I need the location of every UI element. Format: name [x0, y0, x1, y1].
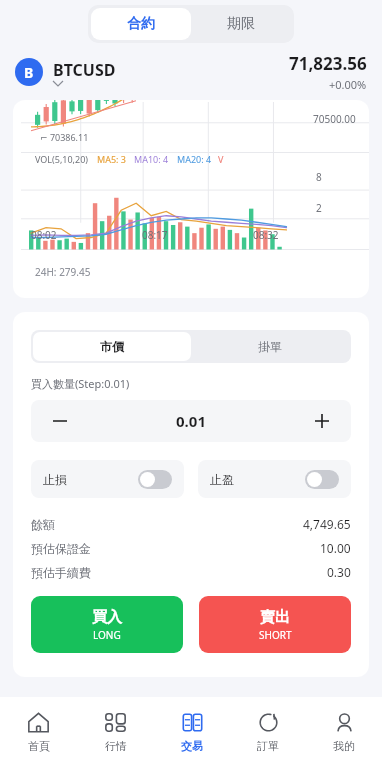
button[interactable]: 期限 — [191, 8, 291, 40]
staticText: 止損 — [43, 472, 67, 487]
staticText: MA10: 4 — [134, 153, 169, 165]
staticText: 行情 — [105, 739, 127, 753]
staticText: 70500.00 — [313, 112, 356, 126]
staticText: LONG — [93, 628, 121, 642]
button[interactable]: 止盈 — [198, 460, 351, 498]
staticText: 08:32 — [253, 228, 279, 242]
staticText: V — [218, 153, 224, 165]
staticText: MA5: 3 — [97, 153, 126, 165]
button[interactable]: 止損 — [31, 460, 184, 498]
button[interactable]: 合約 — [91, 8, 191, 40]
staticText: 買入 — [92, 608, 122, 627]
button[interactable]: 我的 — [306, 697, 382, 767]
button[interactable]: 掛單 — [191, 332, 349, 361]
staticText: 餘額 — [31, 517, 55, 532]
staticText: 0.01 — [176, 411, 206, 431]
button[interactable]: 賣出 — [199, 596, 351, 653]
button[interactable]: 市價 — [33, 332, 191, 361]
staticText: VOL(5,10,20) — [35, 153, 89, 165]
staticText: 期限 — [227, 15, 255, 33]
staticText: MA20: 4 — [177, 153, 212, 165]
staticText: 我的 — [333, 739, 355, 753]
button[interactable]: Increase quantity — [293, 400, 351, 442]
staticText: 10.00 — [320, 540, 351, 556]
button[interactable]: Decrease quantity — [31, 400, 89, 442]
staticText: 市價 — [100, 339, 124, 354]
staticText: 08:02 — [31, 228, 57, 242]
staticText: +0.00% — [329, 77, 367, 92]
button[interactable]: 訂單 — [230, 697, 306, 767]
staticText: 2 — [316, 201, 322, 215]
staticText: 合約 — [127, 15, 155, 33]
staticText: 24H: 279.45 — [35, 265, 91, 279]
staticText: 交易 — [181, 739, 203, 753]
button[interactable]: B — [15, 48, 367, 96]
staticText: 預估手續費 — [31, 565, 91, 580]
staticText: 首頁 — [28, 739, 50, 753]
staticText: 71,823.56 — [289, 52, 367, 75]
staticText: 0.30 — [327, 564, 351, 580]
staticText: 4,749.65 — [303, 516, 351, 532]
button[interactable]: 首頁 — [0, 697, 77, 767]
button[interactable]: 買入 — [31, 596, 183, 653]
staticText: ⌐ 70386.11 — [40, 131, 89, 143]
staticText: 訂單 — [257, 739, 279, 753]
staticText: 止盈 — [210, 472, 234, 487]
staticText: 8 — [316, 170, 322, 184]
staticText: B — [24, 63, 34, 82]
staticText: SHORT — [259, 628, 292, 642]
staticText: 08:17 — [142, 228, 168, 242]
staticText: 掛單 — [258, 339, 282, 354]
button[interactable]: 行情 — [77, 697, 154, 767]
staticText: 買入數量(Step:0.01) — [31, 376, 130, 391]
staticText: 預估保證金 — [31, 541, 91, 556]
button[interactable]: 交易 — [154, 697, 230, 767]
staticText: 賣出 — [260, 608, 290, 627]
staticText: BTCUSD — [53, 59, 116, 81]
